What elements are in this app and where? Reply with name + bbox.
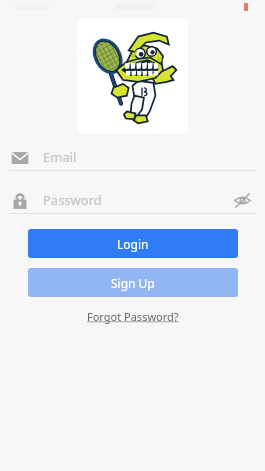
button[interactable]: Show password bbox=[227, 187, 257, 213]
staticText: Sign Up bbox=[111, 275, 155, 291]
button[interactable]: Password bbox=[0, 187, 265, 213]
button[interactable]: Sign Up bbox=[28, 268, 238, 297]
staticText: Email bbox=[43, 148, 77, 166]
staticText: Login bbox=[117, 236, 149, 252]
staticText: Password bbox=[43, 191, 102, 209]
other: Email bbox=[10, 148, 29, 167]
button[interactable]: Email bbox=[0, 144, 265, 170]
button[interactable]: Login bbox=[28, 229, 238, 258]
other: Password bbox=[10, 191, 29, 210]
staticText: Forgot Password? bbox=[87, 309, 179, 324]
button[interactable]: Forgot Password? bbox=[81, 306, 185, 327]
